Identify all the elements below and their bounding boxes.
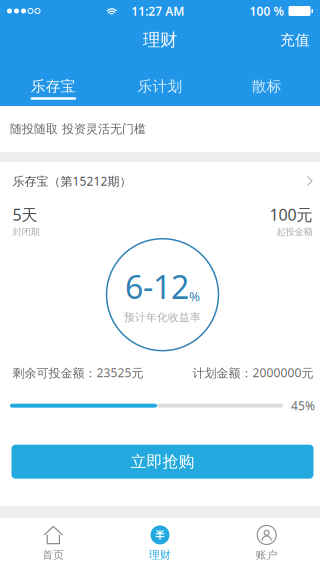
staticText: 理财 [143, 29, 177, 51]
button[interactable]: 立即抢购 [11, 445, 313, 479]
staticText: 100元 [269, 204, 312, 225]
staticText: 理财 [149, 548, 171, 561]
staticText: 计划金额：2000000元 [192, 365, 313, 381]
button[interactable]: 乐存宝 [0, 58, 107, 106]
staticText: 账户 [256, 548, 278, 561]
staticText: 起投金额 [276, 226, 312, 238]
staticText: 立即抢购 [130, 452, 194, 471]
button[interactable]: 散标 [213, 58, 320, 106]
staticText: 乐计划 [137, 77, 182, 95]
button[interactable]: 账户 [213, 518, 320, 569]
button[interactable]: 理财 [107, 518, 213, 569]
button[interactable]: 乐计划 [107, 58, 213, 106]
staticText: 封闭期 [12, 226, 39, 238]
staticText: 首页 [42, 548, 64, 561]
staticText: 乐存宝 [31, 77, 76, 95]
staticText: 100 % [249, 3, 284, 19]
staticText: 6-12 [125, 265, 189, 308]
staticText: 45% [291, 398, 315, 414]
staticText: % [189, 287, 200, 305]
button[interactable]: 充值 [270, 22, 320, 58]
button[interactable]: 乐存宝（第15212期） [2, 162, 320, 200]
staticText: 5天 [12, 204, 37, 225]
staticText: 11:27 AM [131, 3, 184, 19]
button[interactable]: 首页 [0, 518, 107, 569]
staticText: 散标 [252, 77, 282, 95]
staticText: 随投随取 投资灵活无门槛 [10, 122, 146, 136]
staticText: 充值 [280, 31, 310, 49]
staticText: 预计年化收益率 [124, 311, 201, 324]
staticText: 乐存宝（第15212期） [12, 173, 131, 189]
staticText: 剩余可投金额：23525元 [12, 365, 143, 381]
